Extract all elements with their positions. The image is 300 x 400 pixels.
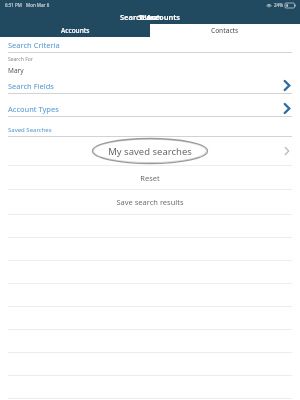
- staticText: 6:51 PM: [5, 2, 22, 8]
- button[interactable]: Search: [0, 10, 300, 24]
- button[interactable]: Accounts: [0, 24, 150, 37]
- button[interactable]: Contacts: [150, 24, 300, 37]
- staticText: Mon Mar 6: [26, 2, 50, 8]
- staticText: 24%: [274, 2, 283, 8]
- staticText: Search Accounts: [120, 12, 181, 22]
- button[interactable]: Search For: [0, 53, 300, 78]
- staticText: Search For: [8, 56, 33, 63]
- button[interactable]: Account Types: [0, 101, 300, 116]
- staticText: Search Fields: [8, 81, 54, 91]
- staticText: My saved searches: [108, 145, 192, 158]
- staticText: Search: [138, 12, 162, 22]
- button[interactable]: Save search results: [0, 190, 300, 214]
- staticText: Contacts: [211, 26, 239, 35]
- staticText: Saved Searches: [8, 126, 52, 134]
- button[interactable]: Search Fields: [0, 78, 300, 93]
- staticText: Save search results: [116, 197, 184, 207]
- button[interactable]: My saved searches: [0, 137, 300, 165]
- staticText: Close: [140, 12, 160, 22]
- button[interactable]: Reset: [0, 166, 300, 189]
- staticText: Search Criteria: [8, 40, 60, 50]
- button[interactable]: Close: [0, 10, 300, 24]
- staticText: Accounts: [61, 26, 90, 35]
- staticText: Mary: [8, 66, 24, 75]
- staticText: Reset: [140, 173, 160, 183]
- staticText: Account Types: [8, 104, 59, 114]
